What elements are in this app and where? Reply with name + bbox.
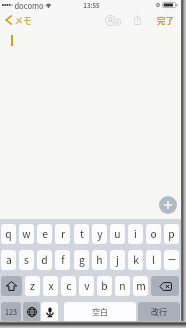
- button[interactable]: Next keyboard: [23, 302, 40, 322]
- button[interactable]: u: [110, 224, 125, 244]
- button[interactable]: 空白: [64, 302, 136, 322]
- staticText: h: [96, 252, 103, 267]
- button[interactable]: m: [133, 276, 148, 296]
- staticText: i: [134, 226, 137, 241]
- staticText: x: [48, 278, 54, 293]
- button[interactable]: 123: [1, 302, 21, 322]
- button[interactable]: y: [92, 224, 107, 244]
- button[interactable]: a: [1, 250, 16, 270]
- staticText: d: [41, 252, 48, 267]
- staticText: v: [84, 278, 90, 293]
- staticText: z: [30, 278, 35, 293]
- staticText: 123: [5, 307, 17, 317]
- staticText: e: [42, 226, 48, 241]
- button[interactable]: h: [92, 250, 107, 270]
- button[interactable]: Add people: [101, 13, 124, 32]
- button[interactable]: o: [146, 224, 161, 244]
- button[interactable]: g: [74, 250, 89, 270]
- staticText: ー: [167, 253, 177, 266]
- button[interactable]: j: [110, 250, 125, 270]
- staticText: 完了: [157, 14, 174, 26]
- staticText: n: [119, 278, 126, 293]
- button[interactable]: i: [128, 224, 143, 244]
- button[interactable]: q: [1, 224, 16, 244]
- button[interactable]: e: [37, 224, 52, 244]
- button[interactable]: Dictation: [41, 302, 58, 322]
- button[interactable]: d: [37, 250, 52, 270]
- button[interactable]: Share note: [128, 13, 146, 32]
- staticText: k: [133, 252, 139, 267]
- button[interactable]: p: [164, 224, 179, 244]
- staticText: メモ: [14, 14, 32, 26]
- staticText: c: [66, 278, 72, 293]
- staticText: 改行: [151, 306, 167, 318]
- staticText: y: [97, 226, 103, 241]
- staticText: u: [114, 226, 121, 241]
- button[interactable]: t: [74, 224, 89, 244]
- staticText: q: [5, 226, 12, 241]
- staticText: 空白: [92, 306, 108, 318]
- button[interactable]: n: [115, 276, 130, 296]
- staticText: 13:55: [83, 1, 100, 10]
- staticText: o: [150, 226, 157, 241]
- button[interactable]: 改行: [138, 302, 180, 322]
- staticText: a: [6, 252, 12, 267]
- button[interactable]: ー: [164, 250, 179, 270]
- staticText: m: [136, 278, 146, 293]
- button[interactable]: v: [79, 276, 94, 296]
- staticText: t: [80, 226, 84, 241]
- button[interactable]: Backspace: [151, 276, 179, 296]
- staticText: w: [22, 226, 31, 241]
- staticText: j: [116, 252, 119, 267]
- button[interactable]: s: [19, 250, 34, 270]
- button[interactable]: Shift: [1, 276, 22, 296]
- button[interactable]: b: [97, 276, 112, 296]
- button[interactable]: r: [55, 224, 70, 244]
- button[interactable]: l: [146, 250, 161, 270]
- staticText: l: [152, 252, 155, 267]
- staticText: r: [61, 226, 65, 241]
- staticText: g: [79, 252, 85, 267]
- staticText: s: [24, 252, 29, 267]
- button[interactable]: w: [19, 224, 34, 244]
- button[interactable]: メモ: [3, 10, 36, 29]
- button[interactable]: k: [128, 250, 143, 270]
- button[interactable]: 完了: [153, 10, 177, 29]
- button[interactable]: x: [43, 276, 58, 296]
- button[interactable]: f: [55, 250, 70, 270]
- button[interactable]: Add attachment: [159, 196, 177, 214]
- staticText: b: [101, 278, 108, 293]
- button[interactable]: z: [25, 276, 40, 296]
- staticText: f: [61, 252, 65, 267]
- staticText: docomo: [14, 0, 44, 11]
- button[interactable]: c: [61, 276, 76, 296]
- staticText: p: [168, 226, 175, 241]
